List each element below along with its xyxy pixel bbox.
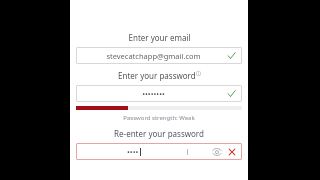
button[interactable]: •••••••• (76, 85, 242, 102)
staticText: stevecatchapp@gmail.com (106, 51, 201, 61)
button[interactable]: Show password (212, 147, 222, 157)
staticText: •••••••• (142, 89, 165, 99)
staticText: Password strength: Weak (123, 114, 195, 122)
staticText: ⓘ (196, 70, 201, 76)
button[interactable]: •••• (76, 143, 242, 160)
staticText: Re-enter your password (114, 128, 204, 139)
button[interactable]: Clear (227, 147, 237, 157)
other: Valid (226, 88, 237, 99)
other: Valid (226, 50, 237, 61)
staticText: Enter your password (118, 70, 196, 81)
button[interactable]: stevecatchapp@gmail.com (76, 47, 242, 64)
staticText: •••• (127, 147, 139, 157)
staticText: Enter your email (128, 32, 191, 43)
